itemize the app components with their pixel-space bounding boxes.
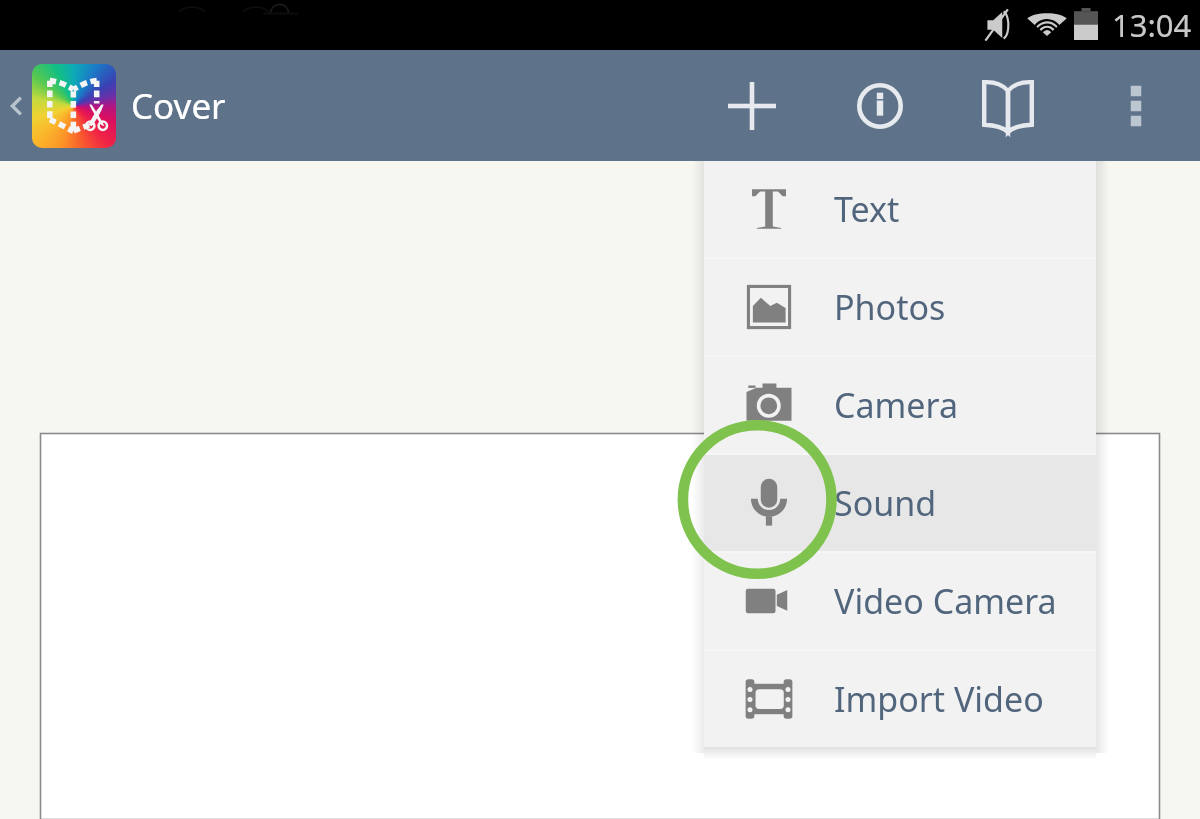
button[interactable]: Info [824,50,936,161]
button[interactable]: Sound [704,455,1096,551]
button[interactable]: Read book [952,50,1064,161]
staticText: 13:04 [1112,4,1192,46]
staticText: Sound [834,480,937,526]
button[interactable]: Video Camera [704,553,1096,649]
button[interactable]: Photos [704,259,1096,355]
button[interactable]: Cover [131,50,226,161]
staticText: Video Camera [834,578,1057,624]
staticText: Camera [834,382,958,428]
button[interactable]: Camera [704,357,1096,453]
staticText: Cover [131,82,226,130]
staticText: Photos [834,284,946,330]
button[interactable]: More options [1080,50,1192,161]
button[interactable]: Add [696,50,808,161]
button[interactable]: Import Video [704,651,1096,747]
staticText: Text [834,186,900,232]
staticText: Import Video [834,676,1044,722]
button[interactable]: Navigate up [0,50,125,161]
button[interactable]: Text [704,161,1096,257]
